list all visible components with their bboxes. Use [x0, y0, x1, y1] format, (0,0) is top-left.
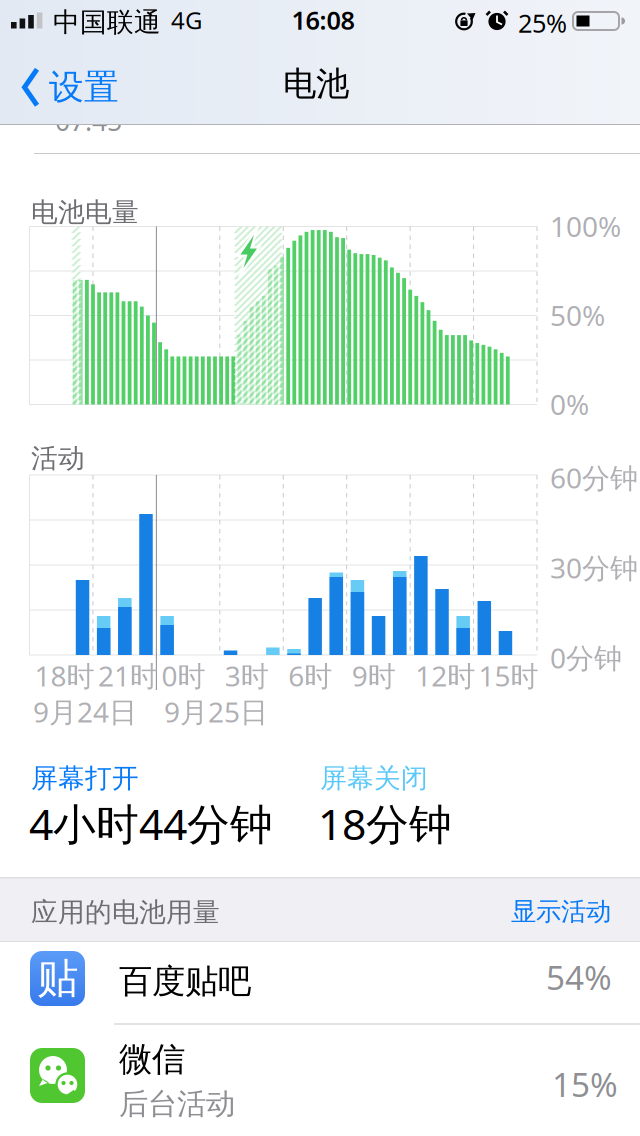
- staticText: 54%: [546, 955, 612, 999]
- staticText: 15%: [552, 1062, 618, 1106]
- button[interactable]: 设置: [22, 66, 119, 109]
- staticText: 屏幕打开: [31, 762, 139, 795]
- staticText: 4小时44分钟: [29, 795, 273, 852]
- staticText: 应用的电池用量: [31, 896, 220, 929]
- staticText: 07:45: [55, 103, 122, 138]
- staticText: 9时: [352, 657, 396, 694]
- staticText: 显示活动: [511, 896, 611, 927]
- button[interactable]: 贴: [0, 0, 640, 81]
- staticText: 0时: [161, 657, 205, 694]
- staticText: 12时: [415, 657, 475, 694]
- staticText: 18分钟: [318, 795, 452, 852]
- staticText: 25%: [518, 6, 567, 40]
- staticText: 30分钟: [550, 549, 638, 586]
- staticText: 16:08: [291, 3, 354, 37]
- staticText: 电池电量: [31, 196, 139, 229]
- staticText: 0%: [550, 385, 589, 423]
- staticText: 18时: [34, 657, 94, 694]
- staticText: 设置: [49, 66, 119, 109]
- staticText: 4G: [171, 4, 202, 36]
- staticText: 9月25日: [164, 693, 268, 730]
- staticText: 贴: [37, 953, 78, 1004]
- staticText: 15时: [479, 657, 539, 694]
- staticText: 6时: [288, 657, 332, 694]
- staticText: 21时: [98, 657, 158, 694]
- staticText: 60分钟: [550, 459, 638, 496]
- staticText: 后台活动: [119, 1086, 235, 1122]
- staticText: 电池: [283, 63, 349, 104]
- staticText: 100%: [550, 207, 621, 245]
- staticText: 3时: [225, 657, 269, 694]
- staticText: 9月24日: [33, 693, 137, 730]
- staticText: 百度贴吧: [119, 961, 251, 1002]
- staticText: 中国联通: [53, 6, 161, 39]
- staticText: 0分钟: [550, 639, 622, 676]
- staticText: 微信: [119, 1039, 185, 1080]
- staticText: 50%: [550, 296, 605, 334]
- button[interactable]: 显示活动: [511, 896, 611, 927]
- staticText: 活动: [31, 442, 85, 475]
- button[interactable]: 微信: [0, 0, 640, 112]
- staticText: 屏幕关闭: [320, 762, 428, 795]
